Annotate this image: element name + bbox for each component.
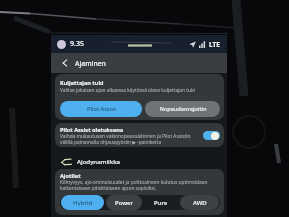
button[interactable]: Nopeudenrajoitin xyxy=(145,101,220,117)
staticText: kaikenlaiseen päivittäiseen ajoon sopivi… xyxy=(60,185,157,192)
button[interactable]: AWD xyxy=(180,195,219,210)
button[interactable]: Power xyxy=(106,195,142,210)
staticText: Hybrid xyxy=(73,199,93,207)
button[interactable]: Pure xyxy=(144,195,178,210)
staticText: Valitse jokaisen ajon alkaessa käytössä … xyxy=(60,87,195,94)
staticText: Pilot Assist oletuksena xyxy=(60,126,124,134)
staticText: välillä painamalla ohjauspyörän ▶ -paini… xyxy=(60,139,162,146)
button[interactable]: Back xyxy=(59,57,71,69)
staticText: Ajotilat xyxy=(60,172,81,180)
staticText: Ajodynamiikka xyxy=(77,157,121,165)
staticText: Vaihda mukautuvan vakionopeussäätimen ja… xyxy=(60,133,191,140)
button[interactable]: Hybrid xyxy=(61,195,104,210)
staticText: Pure xyxy=(154,199,168,207)
staticText: 9.35 xyxy=(70,39,84,49)
staticText: Kuljettajan tuki xyxy=(60,79,104,87)
staticText: AWD xyxy=(193,199,207,207)
staticText: Ajaminen xyxy=(75,59,106,68)
staticText: LTE xyxy=(209,40,220,49)
staticText: Nopeudenrajoitin xyxy=(159,105,207,113)
button[interactable]: Pilot Assist oletuksena xyxy=(55,123,224,147)
button[interactable]: Pilot Assist xyxy=(60,101,142,117)
staticText: Pilot Assist xyxy=(87,105,116,113)
staticText: Power xyxy=(115,199,134,207)
staticText: Kiihtyvyys, ajo-ominaisuudet ja polttoai… xyxy=(60,179,208,186)
